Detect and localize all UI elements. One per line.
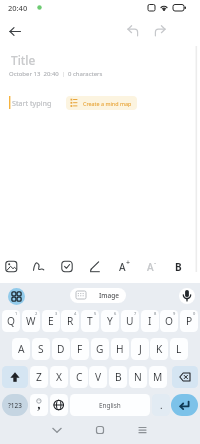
staticText: V [95, 370, 102, 384]
button[interactable] [179, 288, 195, 304]
button[interactable]: T [81, 310, 99, 332]
staticText: 4 [74, 311, 77, 316]
staticText: X [56, 370, 62, 384]
button[interactable]: E [42, 310, 60, 332]
staticText: ?123 [8, 401, 22, 410]
button[interactable] [30, 394, 48, 416]
button[interactable] [151, 24, 169, 40]
staticText: 8 [154, 311, 157, 316]
staticText: U [126, 314, 134, 328]
staticText: 2 [35, 311, 38, 316]
staticText: - [154, 258, 157, 268]
button[interactable] [32, 257, 48, 275]
staticText: 20:40 [8, 3, 28, 13]
button[interactable]: Q [2, 310, 20, 332]
button[interactable] [143, 257, 159, 275]
staticText: A [18, 342, 25, 356]
button[interactable] [2, 366, 28, 388]
staticText: 1 [15, 311, 18, 316]
staticText: B [115, 370, 122, 384]
button[interactable]: L [170, 338, 188, 360]
staticText: M [153, 370, 163, 384]
button[interactable]: M [149, 366, 167, 388]
button[interactable]: H [111, 338, 129, 360]
button[interactable]: Z [30, 366, 48, 388]
button[interactable]: A [12, 338, 30, 360]
button[interactable]: N [129, 366, 147, 388]
button[interactable] [60, 257, 76, 275]
button[interactable]: Create a mind map [66, 96, 137, 110]
button[interactable]: W [22, 310, 40, 332]
staticText: I [148, 314, 152, 328]
staticText: S [38, 342, 44, 356]
staticText: O [165, 314, 173, 328]
button[interactable]: J [131, 338, 149, 360]
staticText: J [139, 342, 142, 356]
staticText: Start typing [12, 98, 52, 108]
button[interactable]: ?123 [2, 394, 28, 416]
button[interactable]: D [52, 338, 70, 360]
staticText: F [77, 342, 83, 356]
staticText: G [96, 342, 104, 356]
button[interactable] [6, 24, 24, 40]
button[interactable]: U [121, 310, 139, 332]
button[interactable]: K [150, 338, 168, 360]
staticText: C [76, 370, 83, 384]
staticText: Q [7, 314, 15, 328]
button[interactable]: Image [70, 288, 126, 303]
staticText: 0 characters [68, 70, 103, 78]
staticText: R [67, 314, 74, 328]
staticText: Y [107, 314, 113, 328]
staticText: D [57, 342, 65, 356]
button[interactable] [124, 24, 142, 40]
staticText: English [99, 401, 121, 410]
staticText: + [126, 258, 131, 268]
button[interactable]: P [180, 310, 198, 332]
staticText: Title [11, 52, 36, 68]
button[interactable] [131, 422, 153, 440]
button[interactable] [89, 422, 111, 440]
button[interactable]: English [70, 394, 150, 416]
button[interactable]: X [50, 366, 68, 388]
button[interactable]: G [91, 338, 109, 360]
button[interactable]: V [89, 366, 107, 388]
staticText: A [119, 260, 126, 274]
button[interactable] [115, 257, 131, 275]
staticText: B [175, 260, 182, 274]
staticText: . [160, 399, 163, 412]
staticText: Image [99, 291, 119, 300]
staticText: H [116, 342, 124, 356]
button[interactable] [8, 288, 25, 305]
button[interactable]: C [70, 366, 88, 388]
button[interactable] [50, 394, 68, 416]
button[interactable]: I [141, 310, 159, 332]
button[interactable]: R [61, 310, 79, 332]
button[interactable] [88, 257, 104, 275]
staticText: 3 [55, 311, 58, 316]
staticText: | [62, 70, 66, 78]
staticText: K [156, 342, 163, 356]
button[interactable]: F [71, 338, 89, 360]
staticText: 5 [94, 311, 97, 316]
staticText: W [26, 314, 36, 328]
button[interactable]: Y [101, 310, 119, 332]
button[interactable] [4, 257, 20, 275]
button[interactable]: . [152, 394, 170, 416]
staticText: N [134, 370, 142, 384]
staticText: A [147, 260, 154, 274]
button[interactable]: B [109, 366, 127, 388]
staticText: T [87, 314, 93, 328]
staticText: 6 [114, 311, 117, 316]
staticText: P [186, 314, 193, 328]
staticText: L [176, 342, 182, 356]
staticText: E [48, 314, 54, 328]
button[interactable] [171, 394, 198, 416]
button[interactable] [172, 366, 198, 388]
staticText: Create a mind map [83, 100, 132, 107]
staticText: 7 [134, 311, 137, 316]
button[interactable]: O [160, 310, 178, 332]
button[interactable] [46, 422, 68, 440]
staticText: 0 [193, 311, 196, 316]
button[interactable]: S [32, 338, 50, 360]
button[interactable] [170, 257, 184, 275]
